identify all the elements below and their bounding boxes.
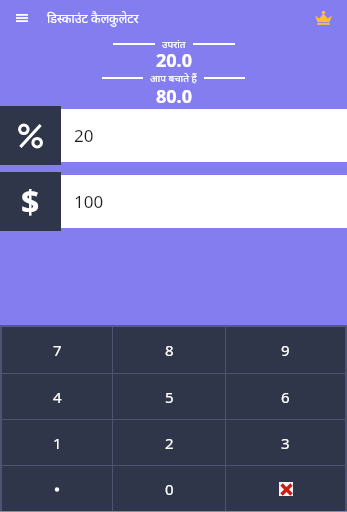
button[interactable]: 2 [113, 420, 225, 465]
staticText: $ [21, 180, 40, 224]
button[interactable]: 9 [226, 327, 345, 373]
button[interactable]: 5 [113, 374, 225, 419]
button[interactable]: 3 [226, 420, 345, 465]
staticText: डिस्काउंट कैलकुलेटर [47, 10, 139, 27]
staticText: उपरांत [162, 37, 186, 51]
staticText: 7 [53, 340, 62, 360]
button[interactable] [2, 466, 112, 511]
staticText: 4 [53, 387, 62, 407]
staticText: 20.0 [156, 48, 192, 73]
button[interactable]: 4 [2, 374, 112, 419]
staticText: 6 [281, 387, 290, 407]
button[interactable] [0, 106, 61, 165]
button[interactable]: 0 [113, 466, 225, 511]
staticText: आप बचाते हैं [150, 71, 197, 85]
button[interactable]: Premium [303, 0, 347, 36]
button[interactable]: 7 [2, 327, 112, 373]
button[interactable]: 20 [61, 109, 347, 162]
staticText: 9 [281, 340, 290, 360]
button[interactable]: 100 [61, 175, 347, 228]
staticText: 2 [165, 433, 174, 453]
staticText: 1 [53, 433, 62, 453]
button[interactable]: Menu [0, 0, 44, 36]
button[interactable] [226, 466, 345, 511]
button[interactable]: $ [0, 172, 61, 231]
button[interactable]: 6 [226, 374, 345, 419]
staticText: 8 [165, 340, 174, 360]
staticText: 0 [165, 479, 174, 499]
button[interactable]: 8 [113, 327, 225, 373]
staticText: 3 [281, 433, 290, 453]
staticText: 20 [74, 124, 94, 147]
staticText: 80.0 [156, 84, 192, 106]
staticText: 5 [165, 387, 174, 407]
button[interactable]: 1 [2, 420, 112, 465]
staticText: 100 [74, 190, 104, 213]
